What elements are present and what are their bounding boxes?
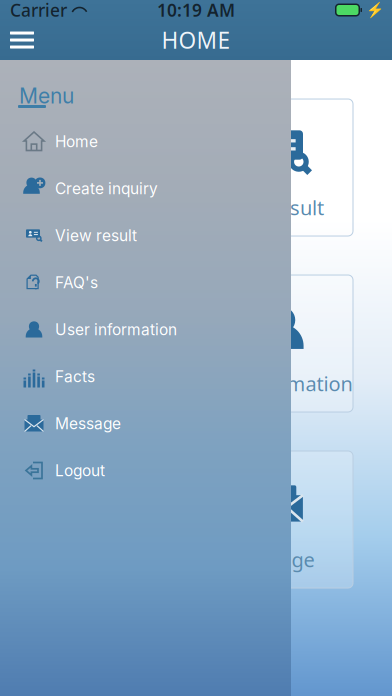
staticText: View result (222, 194, 324, 221)
button[interactable]: Message (211, 451, 353, 588)
staticText: Message (55, 414, 121, 433)
button[interactable]: User information (0, 306, 291, 353)
staticText: Create inquiry (36, 194, 166, 221)
staticText: Logout (55, 461, 105, 480)
button[interactable]: Menu (0, 20, 44, 60)
button[interactable]: User information (211, 275, 353, 412)
button[interactable]: Message (0, 400, 291, 447)
button[interactable]: Home (0, 118, 291, 165)
button[interactable]: View result (211, 99, 353, 236)
button[interactable]: FAQ's (0, 259, 291, 306)
staticText: Menu (19, 83, 74, 108)
button[interactable]: View result (0, 212, 291, 259)
button[interactable]: Create inquiry (0, 165, 291, 212)
staticText: HOME (161, 25, 230, 55)
button[interactable]: Logout (0, 447, 291, 494)
staticText: Carrier (10, 0, 67, 21)
button[interactable]: Facts (0, 353, 291, 400)
button[interactable]: Create inquiry (39, 99, 181, 236)
staticText: Create inquiry (55, 179, 158, 198)
staticText: Facts (55, 367, 95, 386)
staticText: Home (55, 132, 98, 151)
staticText: User information (55, 320, 177, 339)
staticText: 10:19 AM (157, 0, 235, 21)
staticText: ⚡ (366, 2, 384, 18)
button[interactable]: FAQ's (39, 275, 181, 412)
staticText: Message (231, 546, 314, 573)
staticText: User information (193, 370, 352, 397)
staticText: FAQ's (55, 273, 98, 292)
button[interactable]: Facts (39, 451, 181, 588)
staticText: View result (55, 226, 137, 245)
staticText: FAQ's (75, 370, 127, 397)
